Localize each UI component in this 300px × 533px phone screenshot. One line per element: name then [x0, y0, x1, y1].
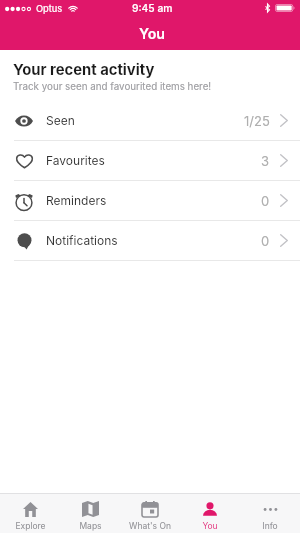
staticText: 3: [261, 153, 270, 169]
staticText: Notifications: [46, 233, 118, 248]
staticText: Your recent activity: [13, 61, 155, 79]
staticText: 0: [261, 233, 270, 249]
button[interactable]: Explore: [0, 494, 60, 533]
button[interactable]: You: [180, 494, 240, 533]
staticText: Favourites: [46, 153, 105, 168]
staticText: Maps: [79, 521, 102, 531]
staticText: Info: [262, 521, 278, 531]
staticText: Explore: [15, 521, 46, 531]
staticText: What's On: [129, 521, 171, 531]
staticText: You: [202, 521, 218, 531]
staticText: Reminders: [46, 193, 107, 208]
button[interactable]: Reminders: [0, 181, 300, 220]
staticText: Track your seen and favourited items her…: [13, 81, 212, 93]
button[interactable]: Favourites: [0, 141, 300, 180]
staticText: You: [139, 25, 166, 42]
staticText: 1/25: [244, 113, 270, 129]
button[interactable]: Info: [240, 494, 300, 533]
button[interactable]: Notifications: [0, 221, 300, 260]
staticText: Optus: [36, 3, 63, 14]
button[interactable]: What's On: [120, 494, 180, 533]
button[interactable]: Maps: [60, 494, 120, 533]
staticText: 9:45 am: [132, 2, 173, 14]
button[interactable]: Seen: [0, 101, 300, 140]
staticText: 0: [261, 193, 270, 209]
staticText: Seen: [46, 113, 75, 128]
